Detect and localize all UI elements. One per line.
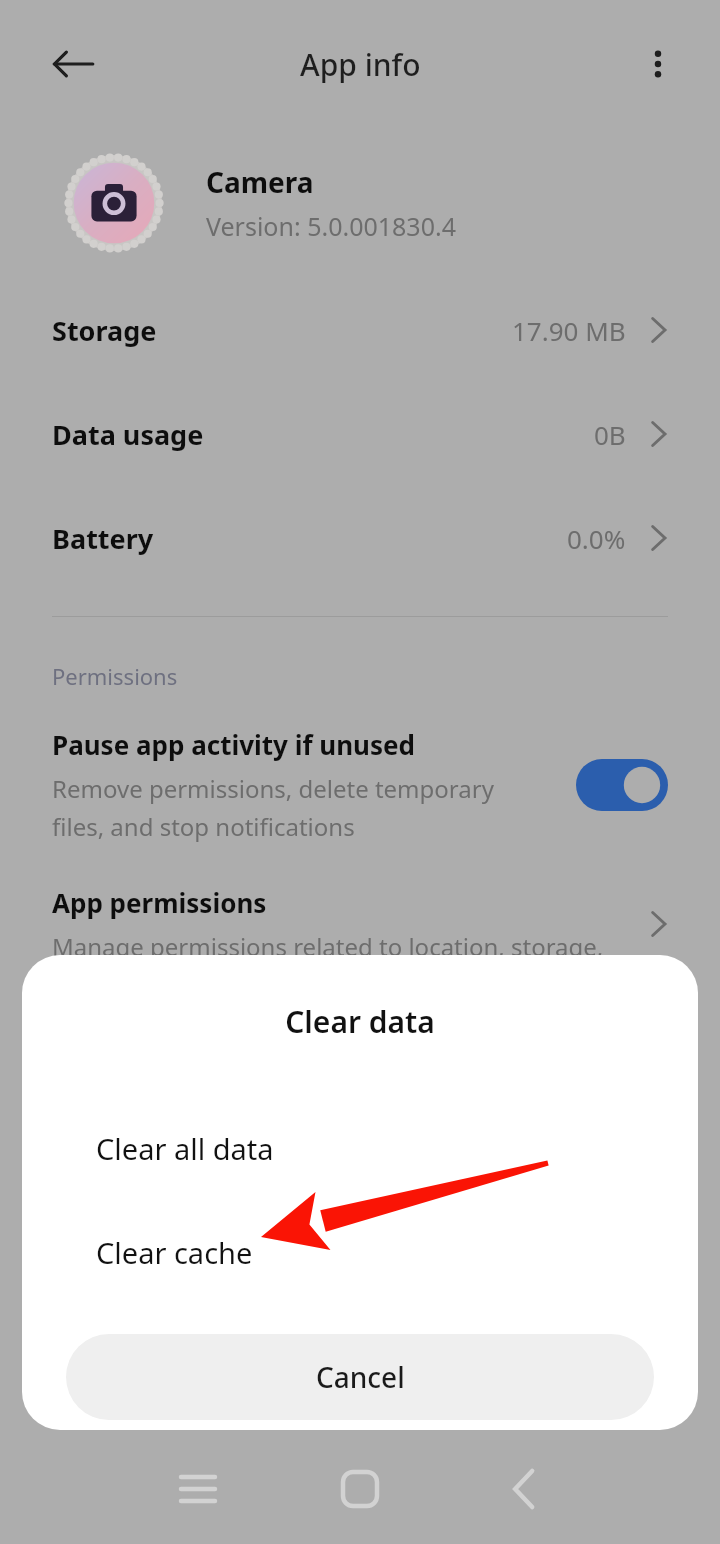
- staticText: Cancel: [316, 1358, 405, 1396]
- staticText: 0B: [594, 417, 626, 452]
- staticText: App info: [300, 44, 421, 85]
- staticText: Remove permissions, delete temporary: [52, 772, 494, 805]
- button[interactable]: Camera: [0, 128, 720, 278]
- staticText: Camera: [206, 163, 314, 201]
- button[interactable]: App permissions: [0, 885, 720, 963]
- button[interactable]: Storage: [0, 278, 720, 382]
- staticText: App permissions: [52, 885, 267, 920]
- button[interactable]: Clear all data: [22, 1096, 698, 1200]
- button[interactable]: Data usage: [0, 382, 720, 486]
- button[interactable]: Back: [34, 25, 112, 103]
- staticText: Clear data: [22, 1001, 698, 1042]
- staticText: Battery: [52, 520, 567, 557]
- staticText: Clear all data: [96, 1129, 274, 1168]
- button[interactable]: More options: [622, 28, 694, 100]
- staticText: 17.90 MB: [512, 313, 626, 348]
- staticText: Pause app activity if unused: [52, 727, 416, 762]
- staticText: Permissions: [52, 661, 178, 691]
- staticText: Data usage: [52, 416, 594, 453]
- button[interactable]: Battery: [0, 486, 720, 590]
- staticText: files, and stop notifications: [52, 810, 355, 843]
- staticText: Version: 5.0.001830.4: [206, 209, 456, 243]
- button[interactable]: Cancel: [66, 1334, 654, 1420]
- staticText: Clear cache: [96, 1233, 253, 1272]
- staticText: 0.0%: [567, 521, 626, 556]
- button[interactable]: Clear cache: [22, 1200, 698, 1304]
- staticText: Storage: [52, 312, 512, 349]
- button[interactable]: Pause app activity if unused: [0, 723, 720, 851]
- staticText: Manage permissions related to location, …: [52, 930, 604, 963]
